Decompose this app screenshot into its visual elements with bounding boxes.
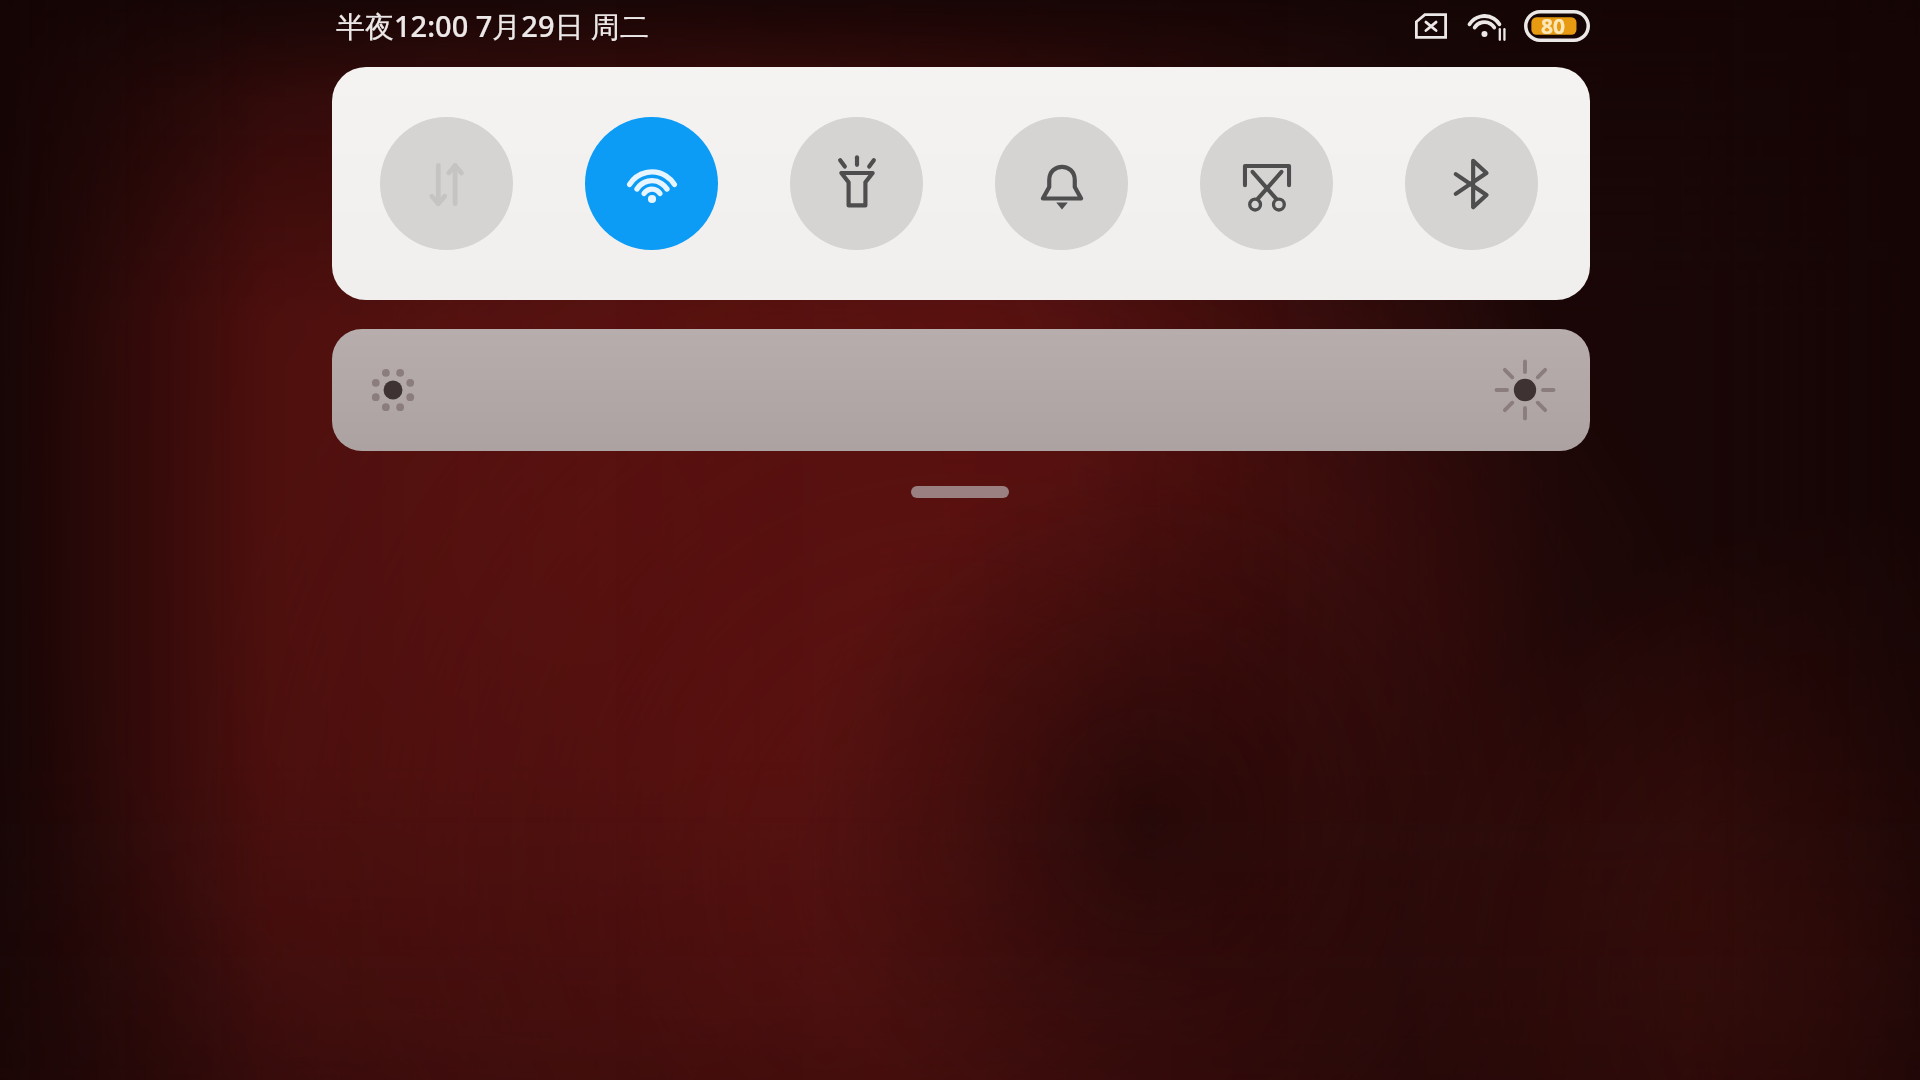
button[interactable]: Expand panel <box>911 486 1009 498</box>
staticText: 半夜12:00 7月29日 周二 <box>336 6 650 46</box>
button[interactable]: Ringer <box>995 117 1128 250</box>
button[interactable]: Bluetooth <box>1405 117 1538 250</box>
button[interactable]: Screenshot <box>1200 117 1333 250</box>
staticText: 80 <box>1541 12 1566 41</box>
button[interactable]: Mobile data <box>380 117 513 250</box>
button[interactable]: Brightness <box>332 329 1590 451</box>
button[interactable]: Wi-Fi <box>585 117 718 250</box>
button[interactable]: Flashlight <box>790 117 923 250</box>
